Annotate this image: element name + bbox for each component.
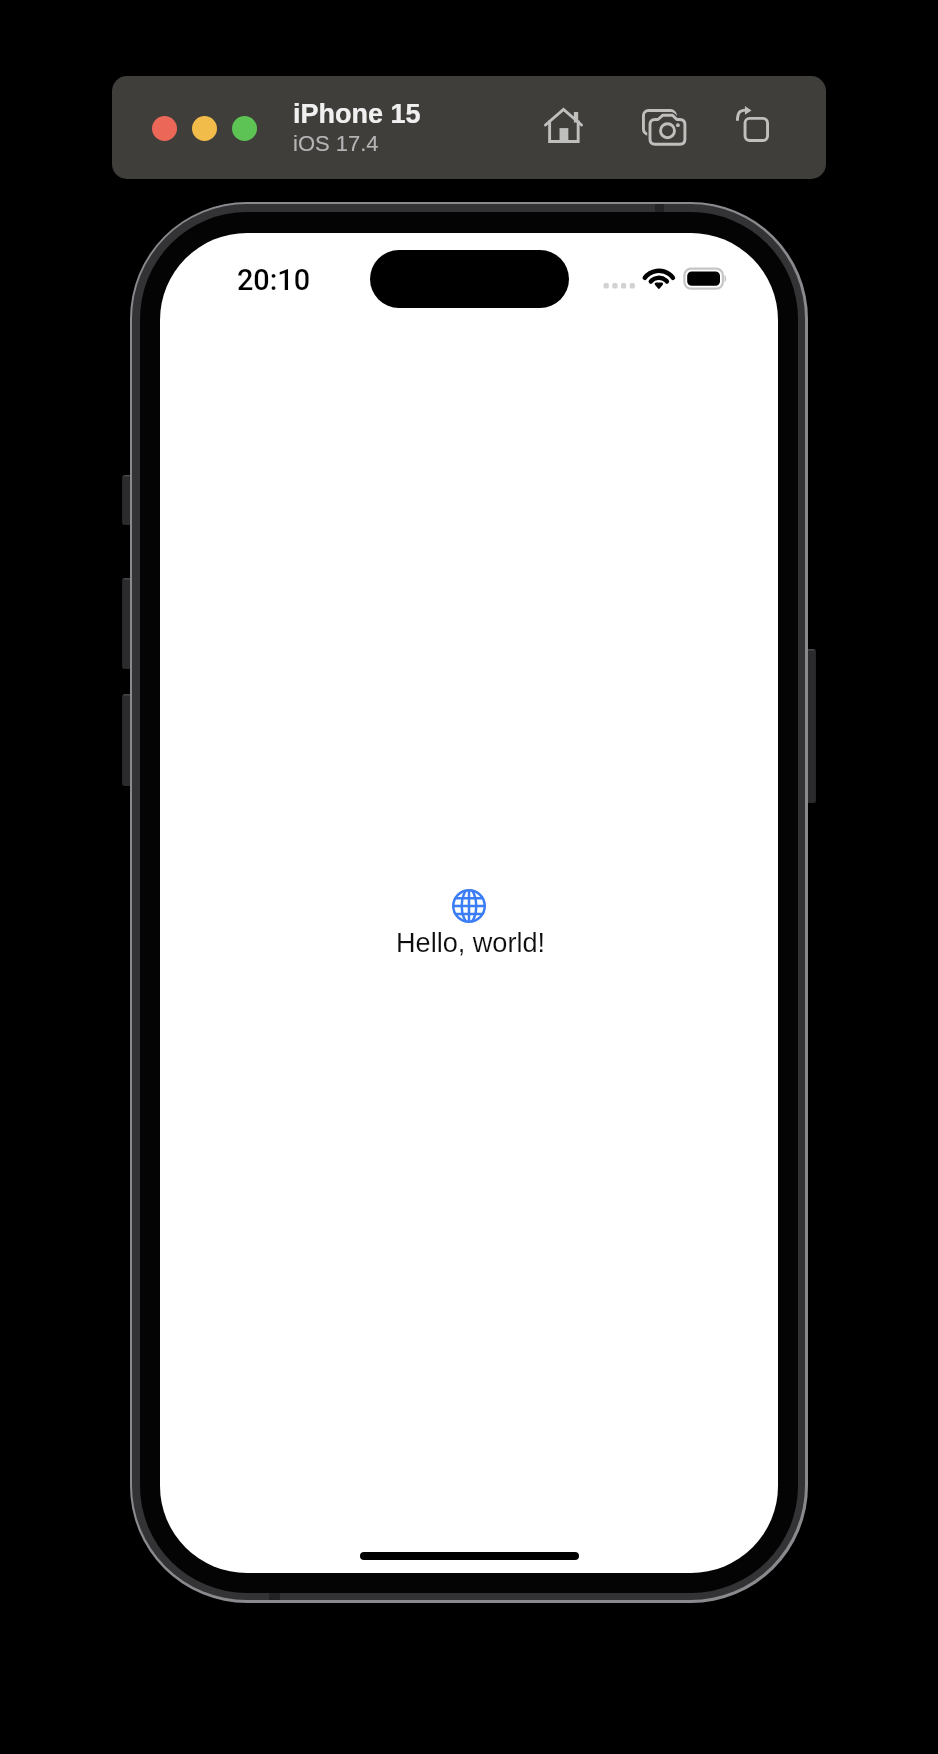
button[interactable]: Rotate <box>725 92 789 156</box>
staticText: Hello, world! <box>396 927 546 957</box>
button[interactable]: Home <box>533 94 597 158</box>
staticText: iPhone 15 <box>293 99 421 129</box>
button[interactable]: Zoom <box>232 116 257 141</box>
button[interactable]: Minimize <box>192 116 217 141</box>
staticText: 20:10 <box>237 263 311 297</box>
button[interactable]: Close <box>152 116 177 141</box>
staticText: iOS 17.4 <box>293 131 379 156</box>
button[interactable]: Screenshot <box>631 95 695 159</box>
